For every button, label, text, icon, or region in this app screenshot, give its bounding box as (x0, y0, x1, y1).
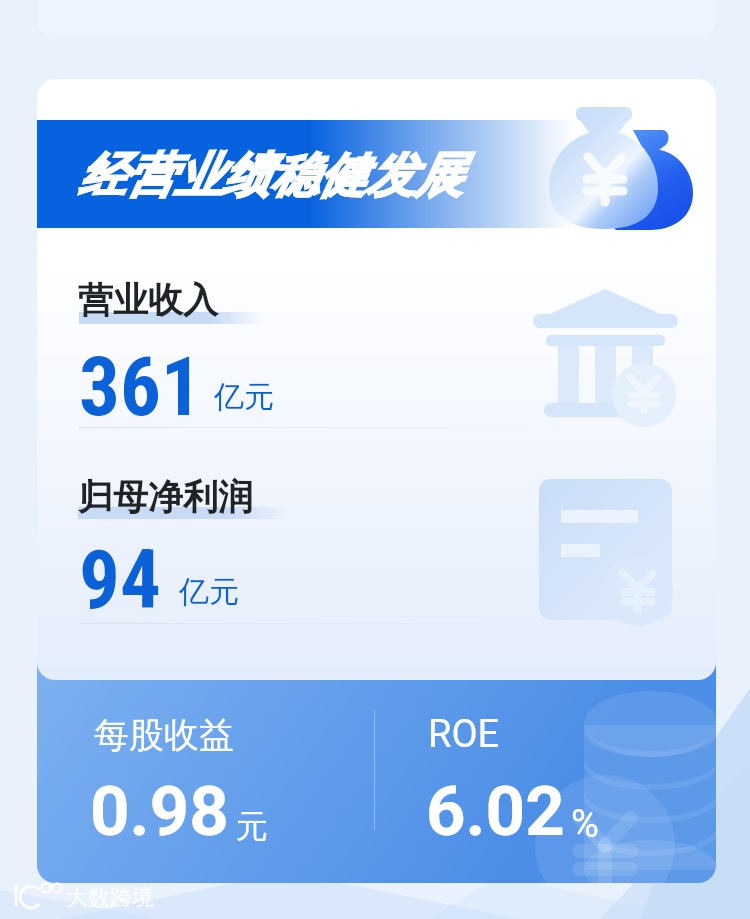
staticText: 每股收益 (94, 713, 234, 757)
staticText: 亿元 (179, 573, 239, 611)
staticText: 94 (79, 533, 161, 628)
staticText: 营业收入 (78, 278, 218, 322)
staticText: 0.98 (90, 771, 229, 852)
staticText: 亿元 (214, 378, 274, 416)
staticText: ROE (428, 712, 500, 757)
staticText: 6.02 (426, 771, 565, 852)
staticText: 元 (236, 806, 268, 846)
staticText: 大数跨境 (66, 884, 154, 912)
staticText: % (571, 802, 599, 847)
staticText: 361 (79, 340, 202, 435)
staticText: 经营业绩稳健发展 (78, 146, 462, 206)
staticText: 归母净利润 (78, 475, 253, 519)
